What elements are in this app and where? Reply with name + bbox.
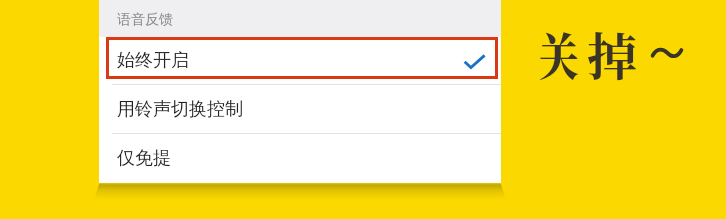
button[interactable]: 仅免提: [99, 134, 501, 182]
button[interactable]: 始终开启: [99, 37, 501, 84]
staticText: 始终开启: [117, 49, 189, 72]
staticText: 用铃声切换控制: [117, 98, 243, 121]
staticText: 关掉: [533, 17, 641, 89]
staticText: 语音反馈: [117, 11, 173, 29]
button[interactable]: 用铃声切换控制: [99, 85, 501, 133]
staticText: 仅免提: [117, 147, 171, 170]
other: Selected: [464, 55, 485, 68]
